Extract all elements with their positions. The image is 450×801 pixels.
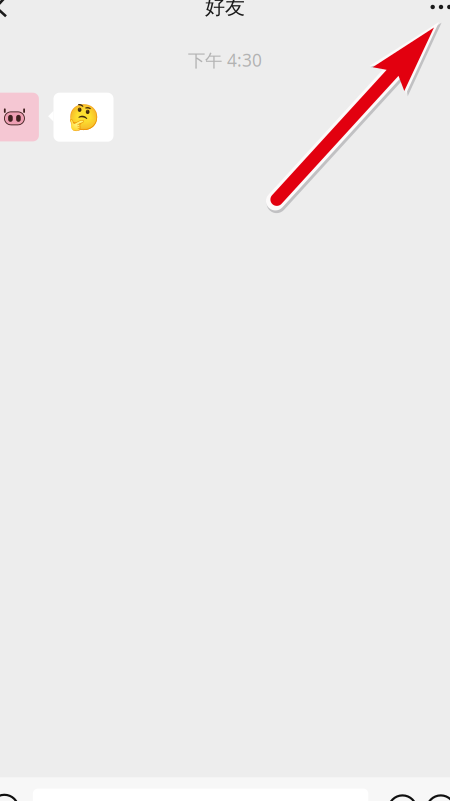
button[interactable]: Emoji <box>388 795 416 801</box>
button[interactable]: Voice message <box>0 795 18 801</box>
staticText: 下午 4:30 <box>188 48 262 71</box>
button[interactable]: Back <box>0 0 25 19</box>
staticText: 好友 <box>205 0 245 19</box>
button[interactable]: More options <box>427 795 450 801</box>
button[interactable]: More <box>419 0 450 20</box>
staticText: 🤔 <box>67 103 99 132</box>
